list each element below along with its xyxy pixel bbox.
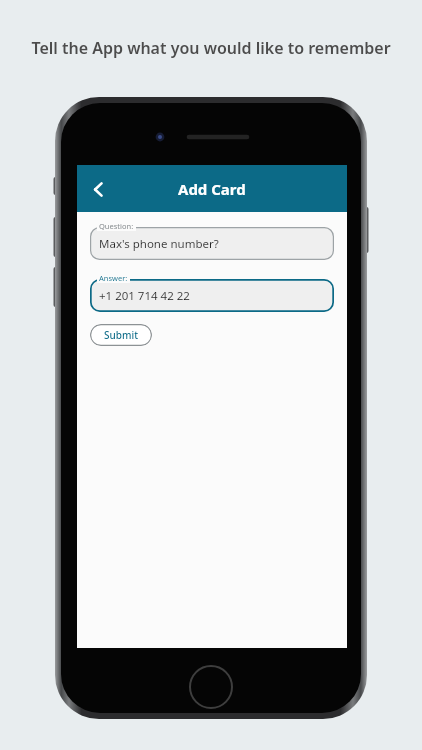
staticText: Question: bbox=[99, 221, 134, 231]
staticText: Tell the App what you would like to reme… bbox=[31, 37, 391, 59]
staticText: Submit bbox=[104, 328, 138, 342]
staticText: Answer: bbox=[99, 273, 128, 283]
staticText: Max's phone number? bbox=[99, 236, 219, 252]
button[interactable]: +1 201 714 42 22 bbox=[90, 272, 334, 312]
staticText: +1 201 714 42 22 bbox=[99, 288, 190, 304]
button[interactable]: Submit bbox=[90, 324, 152, 346]
button[interactable]: Back bbox=[77, 168, 119, 210]
button[interactable]: Max's phone number? bbox=[90, 220, 334, 260]
staticText: Add Card bbox=[178, 179, 246, 199]
